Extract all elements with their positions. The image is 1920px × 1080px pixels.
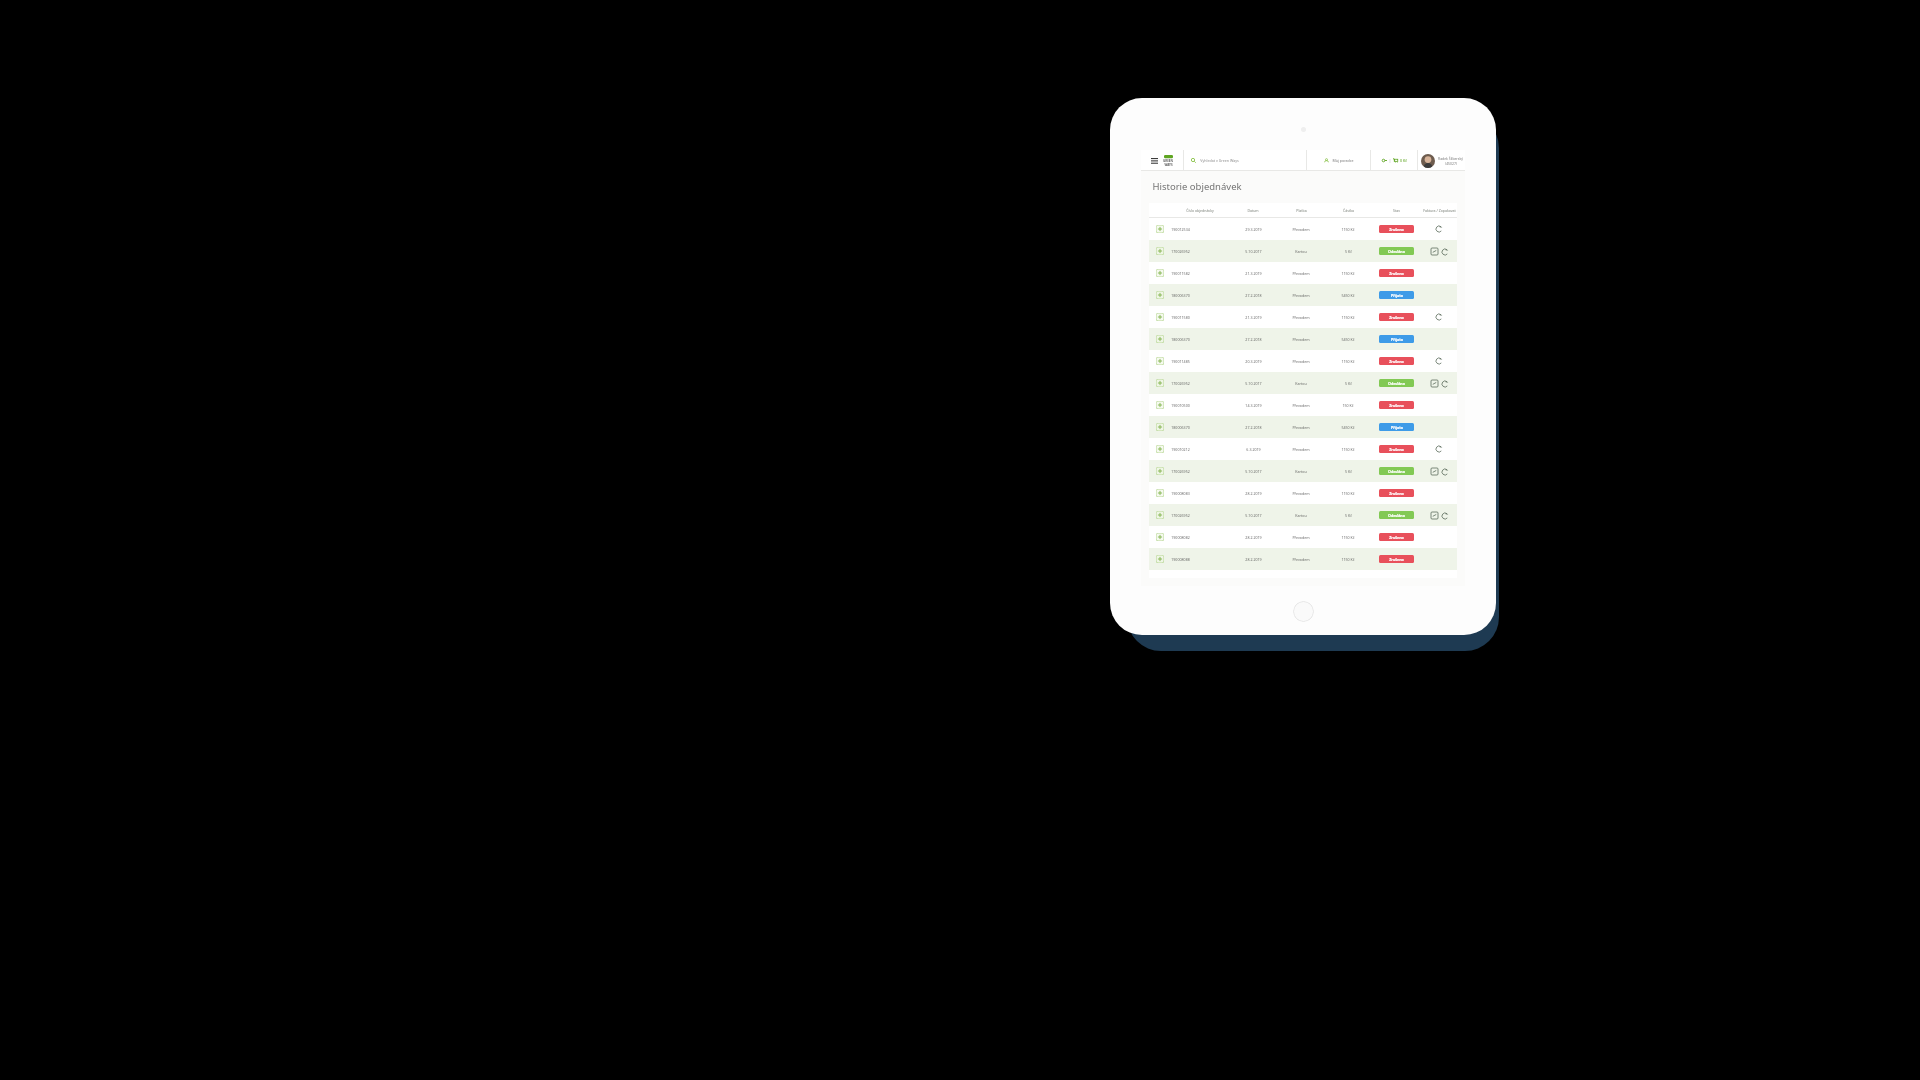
button[interactable]: Můj poradce <box>1307 150 1370 171</box>
button[interactable]: Rozbalit <box>1149 548 1457 570</box>
staticText: 180006370 <box>1171 337 1190 342</box>
button[interactable]: Zopakovat <box>1436 226 1442 232</box>
button[interactable]: Odesláno <box>1379 247 1414 255</box>
button[interactable]: Rozbalit <box>1149 240 1457 262</box>
button[interactable]: Rozbalit <box>1156 401 1164 409</box>
button[interactable]: Zrušeno <box>1379 445 1414 453</box>
staticText: 1150 Kč <box>1341 227 1355 232</box>
staticText: 28.2.2019 <box>1245 491 1262 496</box>
staticText: 1150 Kč <box>1341 535 1355 540</box>
button[interactable]: Rozbalit <box>1149 438 1457 460</box>
button[interactable]: Rozbalit <box>1156 247 1164 255</box>
button[interactable]: Rozbalit <box>1156 313 1164 321</box>
staticText: 5 Kč <box>1345 513 1352 518</box>
button[interactable]: Rozbalit <box>1156 269 1164 277</box>
button[interactable]: Zrušeno <box>1379 533 1414 541</box>
button[interactable]: Vyhledat v Green Ways <box>1184 150 1306 171</box>
staticText: Přijato <box>1391 337 1403 342</box>
staticText: Převodem <box>1292 447 1310 452</box>
button[interactable]: Rozbalit <box>1156 379 1164 387</box>
button[interactable]: Zrušeno <box>1379 555 1414 563</box>
button[interactable]: Menu <box>1141 150 1183 171</box>
staticText: 180006370 <box>1171 293 1190 298</box>
button[interactable]: Odesláno <box>1379 379 1414 387</box>
button[interactable]: Zopakovat <box>1436 358 1442 364</box>
button[interactable]: Rozbalit <box>1149 504 1457 526</box>
button[interactable]: Zopakovat <box>1436 314 1442 320</box>
staticText: Převodem <box>1292 271 1310 276</box>
button[interactable]: Rozbalit <box>1149 482 1457 504</box>
button[interactable]: Radek Šliberský <box>1418 150 1465 171</box>
button[interactable]: Zrušeno <box>1379 225 1414 233</box>
staticText: 0 Kč <box>1400 158 1407 163</box>
button[interactable]: Rozbalit <box>1149 218 1457 240</box>
staticText: Převodem <box>1292 359 1310 364</box>
button[interactable]: Zrušeno <box>1379 401 1414 409</box>
staticText: Platba <box>1296 208 1307 213</box>
button[interactable]: Rozbalit <box>1156 357 1164 365</box>
button[interactable]: Rozbalit <box>1149 416 1457 438</box>
button[interactable]: Zrušeno <box>1379 269 1414 277</box>
button[interactable]: Rozbalit <box>1156 533 1164 541</box>
button[interactable]: Přijato <box>1379 335 1414 343</box>
button[interactable]: Rozbalit <box>1156 291 1164 299</box>
button[interactable]: Faktura <box>1431 380 1438 387</box>
button[interactable]: Rozbalit <box>1149 460 1457 482</box>
button[interactable]: Rozbalit <box>1149 394 1457 416</box>
button[interactable]: Zopakovat <box>1442 249 1448 255</box>
button[interactable]: Rozbalit <box>1149 350 1457 372</box>
staticText: Kartou <box>1295 381 1307 386</box>
staticText: Převodem <box>1292 337 1310 342</box>
button[interactable]: Rozbalit <box>1149 306 1457 328</box>
button[interactable]: Faktura <box>1431 248 1438 255</box>
staticText: 5.10.2017 <box>1245 513 1262 518</box>
staticText: 190008082 <box>1171 535 1190 540</box>
button[interactable]: Přijato <box>1379 423 1414 431</box>
button[interactable]: Zrušeno <box>1379 357 1414 365</box>
button[interactable]: Rozbalit <box>1149 262 1457 284</box>
button[interactable]: Rozbalit <box>1156 445 1164 453</box>
staticText: 170026952 <box>1171 381 1190 386</box>
button[interactable]: Zrušeno <box>1379 313 1414 321</box>
button[interactable]: Rozbalit <box>1149 284 1457 306</box>
button[interactable]: Rozbalit <box>1149 328 1457 350</box>
button[interactable]: Košík <box>1371 150 1417 171</box>
staticText: | <box>1389 158 1391 163</box>
staticText: Zrušeno <box>1389 271 1404 276</box>
button[interactable]: Odesláno <box>1379 467 1414 475</box>
button[interactable]: Faktura <box>1431 468 1438 475</box>
button[interactable]: Rozbalit <box>1156 335 1164 343</box>
staticText: 1150 Kč <box>1341 447 1355 452</box>
button[interactable]: Zopakovat <box>1436 446 1442 452</box>
button[interactable]: Zopakovat <box>1442 381 1448 387</box>
staticText: 190011580 <box>1171 315 1190 320</box>
button[interactable]: Faktura <box>1431 512 1438 519</box>
staticText: Kartou <box>1295 469 1307 474</box>
staticText: Částka <box>1343 208 1354 213</box>
button[interactable]: Odesláno <box>1379 511 1414 519</box>
button[interactable]: Rozbalit <box>1156 467 1164 475</box>
staticText: 5 Kč <box>1345 249 1352 254</box>
button[interactable]: Zopakovat <box>1442 469 1448 475</box>
staticText: Zrušeno <box>1389 491 1404 496</box>
button[interactable]: Rozbalit <box>1156 423 1164 431</box>
button[interactable]: Přijato <box>1379 291 1414 299</box>
staticText: Odesláno <box>1388 381 1405 386</box>
staticText: Zrušeno <box>1389 359 1404 364</box>
staticText: Přijato <box>1391 425 1403 430</box>
button[interactable]: Rozbalit <box>1156 225 1164 233</box>
button[interactable]: Rozbalit <box>1156 511 1164 519</box>
staticText: 5.10.2017 <box>1245 249 1262 254</box>
staticText: 27.2.2018 <box>1245 425 1262 430</box>
staticText: Zrušeno <box>1389 227 1404 232</box>
button[interactable]: Rozbalit <box>1149 526 1457 548</box>
button[interactable]: Zopakovat <box>1442 513 1448 519</box>
staticText: Historie objednávek <box>1152 180 1242 193</box>
staticText: 29.3.2019 <box>1245 227 1262 232</box>
button[interactable]: Rozbalit <box>1149 372 1457 394</box>
button[interactable]: Rozbalit <box>1156 555 1164 563</box>
staticText: 1150 Kč <box>1341 359 1355 364</box>
button[interactable]: Zrušeno <box>1379 489 1414 497</box>
staticText: Odesláno <box>1388 249 1405 254</box>
button[interactable]: Rozbalit <box>1156 489 1164 497</box>
